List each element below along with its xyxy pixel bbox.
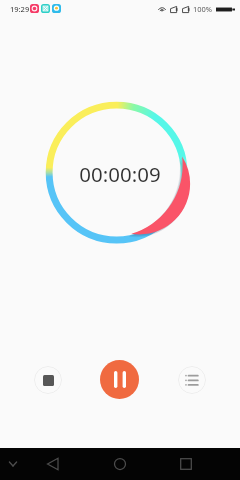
staticText: 100% (193, 4, 213, 14)
button[interactable]: Recents (176, 454, 196, 474)
button[interactable]: Pause (100, 360, 139, 399)
button[interactable]: Laps (178, 366, 206, 394)
button[interactable]: Home (110, 454, 130, 474)
staticText: 00:00:09 (0, 160, 240, 188)
button[interactable]: Back (43, 454, 63, 474)
button[interactable]: Stop (34, 366, 62, 394)
staticText: 19:29 (10, 4, 30, 14)
button[interactable]: Hide keyboard (3, 454, 23, 474)
